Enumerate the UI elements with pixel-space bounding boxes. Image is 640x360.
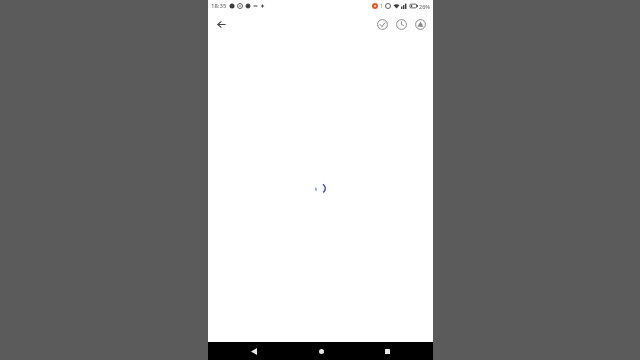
staticText: 1 [380,3,383,10]
staticText: 18:35 [211,2,227,10]
button[interactable]: Recent apps [367,342,407,360]
staticText: 26% [419,3,430,10]
button[interactable]: Alerts [411,15,429,33]
button[interactable]: Back [234,342,274,360]
button[interactable]: Back [212,15,230,33]
button[interactable]: History [392,15,410,33]
button[interactable]: Home [301,342,341,360]
button[interactable]: Verified [373,15,391,33]
